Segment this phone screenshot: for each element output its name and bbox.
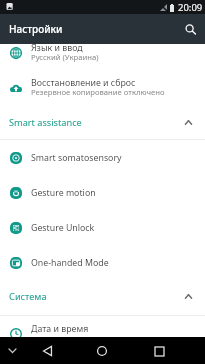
button[interactable]: Hide keyboard	[4, 342, 21, 359]
button[interactable]: Gesture motion	[0, 175, 205, 210]
button[interactable]: Back	[35, 339, 59, 363]
button[interactable]: Recents	[147, 339, 171, 363]
button[interactable]: Smart somatosensory	[0, 140, 205, 175]
staticText: 20:09	[178, 1, 203, 14]
button[interactable]: Gesture Unlock	[0, 210, 205, 245]
staticText: One-handed Mode	[31, 257, 109, 269]
staticText: Язык и ввод	[31, 42, 83, 54]
staticText: Gesture Unlock	[31, 222, 95, 234]
button[interactable]: Home	[90, 339, 114, 363]
staticText: Smart somatosensory	[31, 152, 122, 164]
button[interactable]: Дата и время	[0, 311, 205, 346]
staticText: Gesture motion	[31, 187, 96, 199]
button[interactable]: Smart assistance	[0, 107, 205, 137]
staticText: Русский (Украина)	[31, 52, 99, 62]
staticText: Резервное копирование отключено	[31, 87, 165, 97]
button[interactable]: Система	[0, 281, 205, 311]
button[interactable]: Восстановление и сброс	[0, 70, 205, 105]
staticText: Восстановление и сброс	[31, 77, 136, 89]
staticText: Дата и время	[31, 323, 89, 335]
button[interactable]: Search	[178, 17, 202, 41]
staticText: Система	[9, 290, 47, 303]
button[interactable]: One-handed Mode	[0, 245, 205, 280]
staticText: Настройки	[9, 22, 63, 36]
button[interactable]: Язык и ввод	[0, 35, 205, 70]
staticText: Smart assistance	[9, 116, 82, 129]
